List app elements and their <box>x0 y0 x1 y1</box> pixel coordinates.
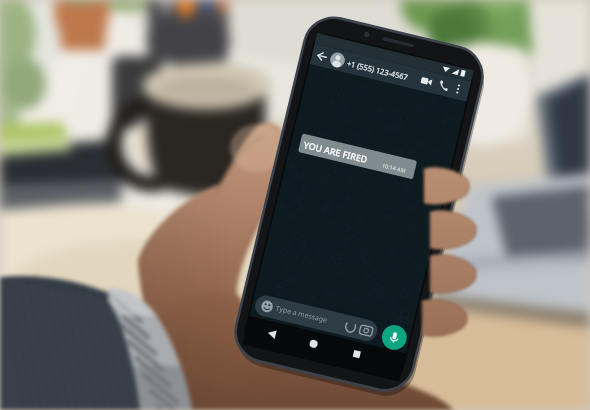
button[interactable]: Chat conversation <box>0 0 590 410</box>
other: Chat conversation <box>0 0 590 410</box>
